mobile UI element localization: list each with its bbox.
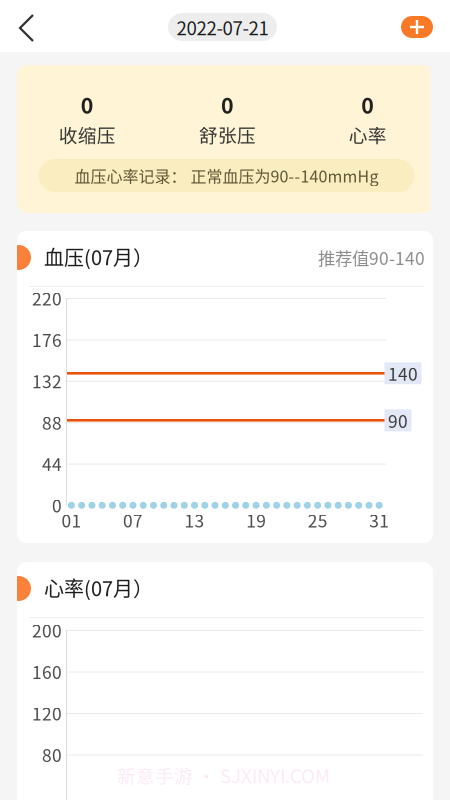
staticText: 140 — [388, 361, 418, 386]
staticText: 推荐值90-140 — [318, 245, 425, 270]
button[interactable]: Back — [0, 0, 52, 52]
staticText: 0 — [52, 492, 62, 518]
staticText: 19 — [246, 507, 266, 533]
staticText: 0 — [221, 89, 234, 120]
staticText: 心率(07月） — [44, 573, 153, 602]
staticText: 90 — [388, 408, 408, 433]
staticText: 13 — [185, 507, 205, 533]
staticText: 舒张压 — [199, 121, 256, 148]
staticText: 220 — [32, 285, 62, 311]
button[interactable]: Add record — [395, 5, 439, 49]
staticText: 新意手游 · SJXINYI.COM — [117, 761, 330, 788]
staticText: 31 — [369, 507, 389, 533]
staticText: 0 — [361, 89, 374, 120]
staticText: 血压(07月） — [44, 242, 153, 271]
staticText: 44 — [42, 451, 62, 476]
staticText: 176 — [32, 327, 62, 352]
button[interactable]: 2022-07-21 — [168, 13, 277, 41]
staticText: 80 — [42, 742, 62, 767]
staticText: 心率 — [349, 121, 387, 148]
staticText: 160 — [32, 659, 62, 684]
staticText: 25 — [308, 507, 328, 533]
staticText: 132 — [32, 368, 62, 393]
staticText: 血压心率记录： 正常血压为90--140mmHg — [74, 164, 378, 187]
staticText: 88 — [42, 410, 62, 435]
staticText: 200 — [32, 617, 62, 643]
staticText: 120 — [32, 700, 62, 726]
staticText: 01 — [61, 507, 81, 533]
staticText: 0 — [81, 89, 94, 120]
staticText: 2022-07-21 — [176, 13, 268, 40]
staticText: 收缩压 — [59, 121, 116, 148]
staticText: 07 — [123, 507, 143, 533]
